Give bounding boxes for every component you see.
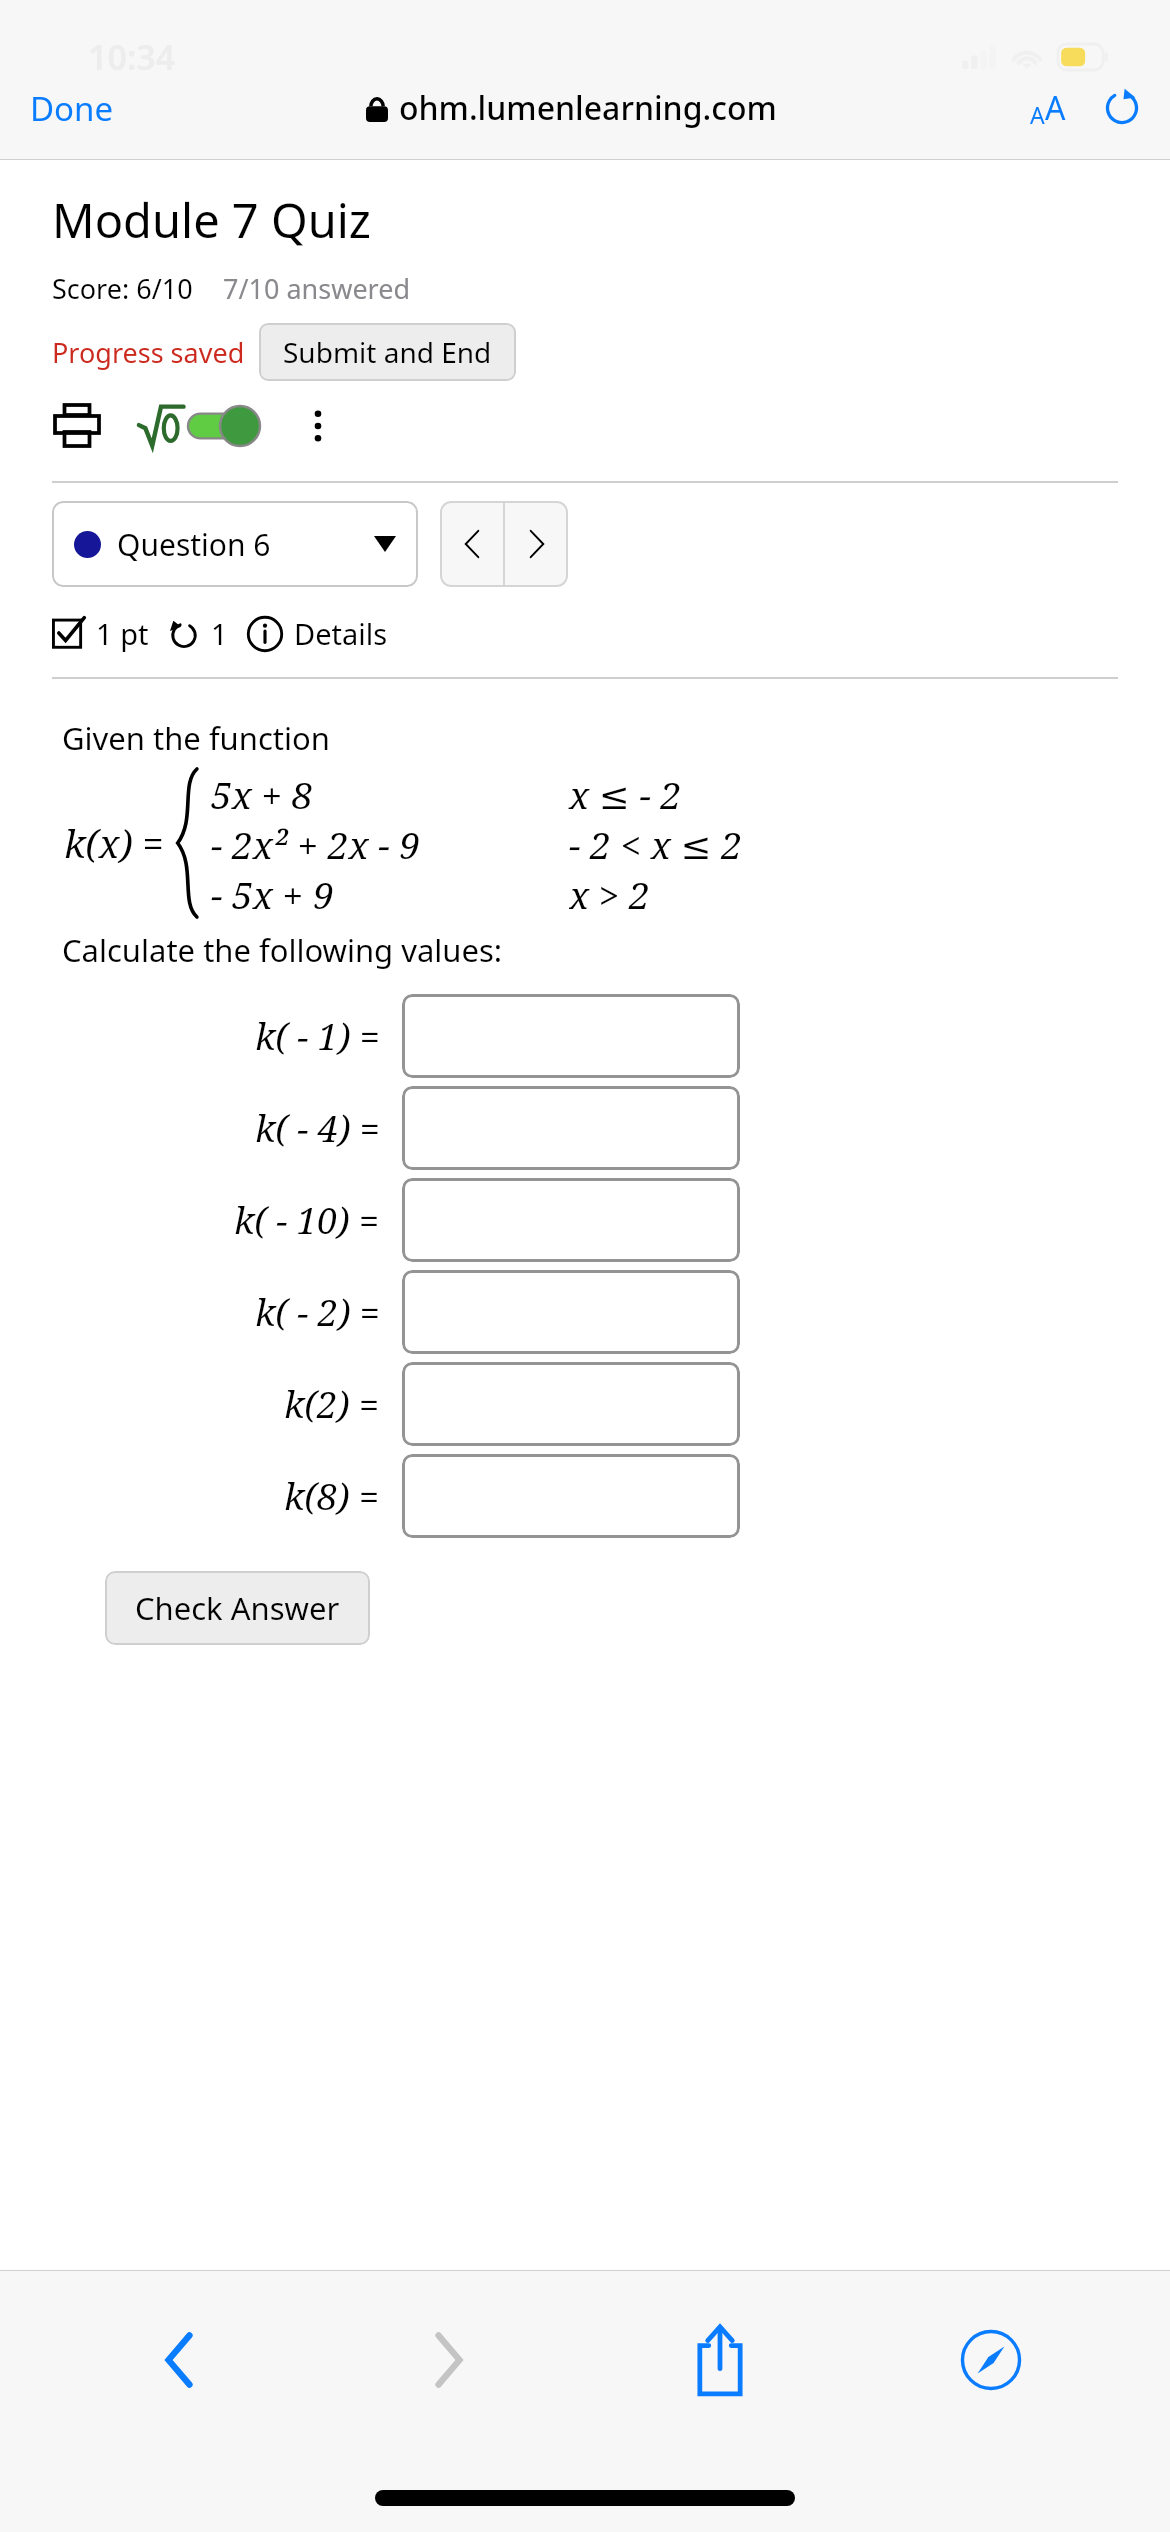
staticText: Given the function: [62, 717, 330, 759]
staticText: Submit and End: [283, 333, 492, 371]
staticText: A: [1045, 86, 1066, 130]
staticText: − 2x² + 2x − 9: [211, 819, 420, 869]
button[interactable]: Next question: [505, 501, 568, 587]
staticText: k( − 10) =: [234, 1196, 380, 1245]
button[interactable]: Print: [52, 401, 102, 451]
staticText: 7/10 answered: [223, 270, 411, 307]
button[interactable]: Share: [584, 2300, 855, 2420]
staticText: k(2) =: [284, 1380, 380, 1429]
staticText: k(8) =: [284, 1472, 380, 1521]
button[interactable]: Check Answer: [105, 1571, 370, 1645]
button[interactable]: Answer field k( − 1) =: [402, 994, 740, 1078]
staticText: 1: [211, 614, 228, 653]
button[interactable]: Answer field k( − 10) =: [402, 1178, 740, 1262]
button[interactable]: Question 6: [52, 501, 418, 587]
button[interactable]: Done: [26, 78, 118, 139]
staticText: Calculate the following values:: [62, 929, 503, 971]
staticText: x > 2: [569, 869, 650, 917]
staticText: − 2 < x ≤ 2: [569, 819, 742, 869]
button[interactable]: Back: [44, 2300, 314, 2420]
button[interactable]: Details: [246, 614, 388, 653]
button[interactable]: Math editor toggle: [188, 406, 260, 446]
staticText: Progress saved: [52, 334, 245, 371]
staticText: Question 6: [117, 524, 271, 565]
staticText: Score: 6/10: [52, 270, 193, 307]
staticText: Check Answer: [135, 1587, 340, 1629]
staticText: Module 7 Quiz: [52, 188, 371, 252]
button[interactable]: Previous question: [440, 501, 503, 587]
staticText: A: [1030, 99, 1045, 130]
button[interactable]: Text size: [1026, 86, 1070, 130]
button[interactable]: Reload: [1100, 86, 1144, 130]
staticText: 10:34: [88, 34, 176, 80]
button[interactable]: Answer field k(8) =: [402, 1454, 740, 1538]
button[interactable]: More options: [296, 404, 340, 448]
staticText: 5x + 8: [211, 769, 313, 819]
button[interactable]: Open in Safari: [855, 2300, 1126, 2420]
button[interactable]: Forward: [314, 2300, 584, 2420]
button[interactable]: Submit and End: [259, 323, 516, 381]
button[interactable]: Answer field k( − 2) =: [402, 1270, 740, 1354]
staticText: k(x) =: [64, 817, 164, 869]
staticText: x ≤ − 2: [569, 769, 682, 819]
staticText: 1 pt: [96, 614, 149, 653]
staticText: k( − 2) =: [255, 1288, 380, 1337]
staticText: ohm.lumenlearning.com: [399, 86, 777, 130]
staticText: − 5x + 9: [211, 869, 334, 917]
button[interactable]: Answer field k(2) =: [402, 1362, 740, 1446]
staticText: Done: [30, 86, 114, 131]
button[interactable]: Answer field k( − 4) =: [402, 1086, 740, 1170]
staticText: k( − 4) =: [255, 1104, 380, 1153]
staticText: Details: [294, 614, 388, 653]
staticText: k( − 1) =: [255, 1012, 380, 1061]
